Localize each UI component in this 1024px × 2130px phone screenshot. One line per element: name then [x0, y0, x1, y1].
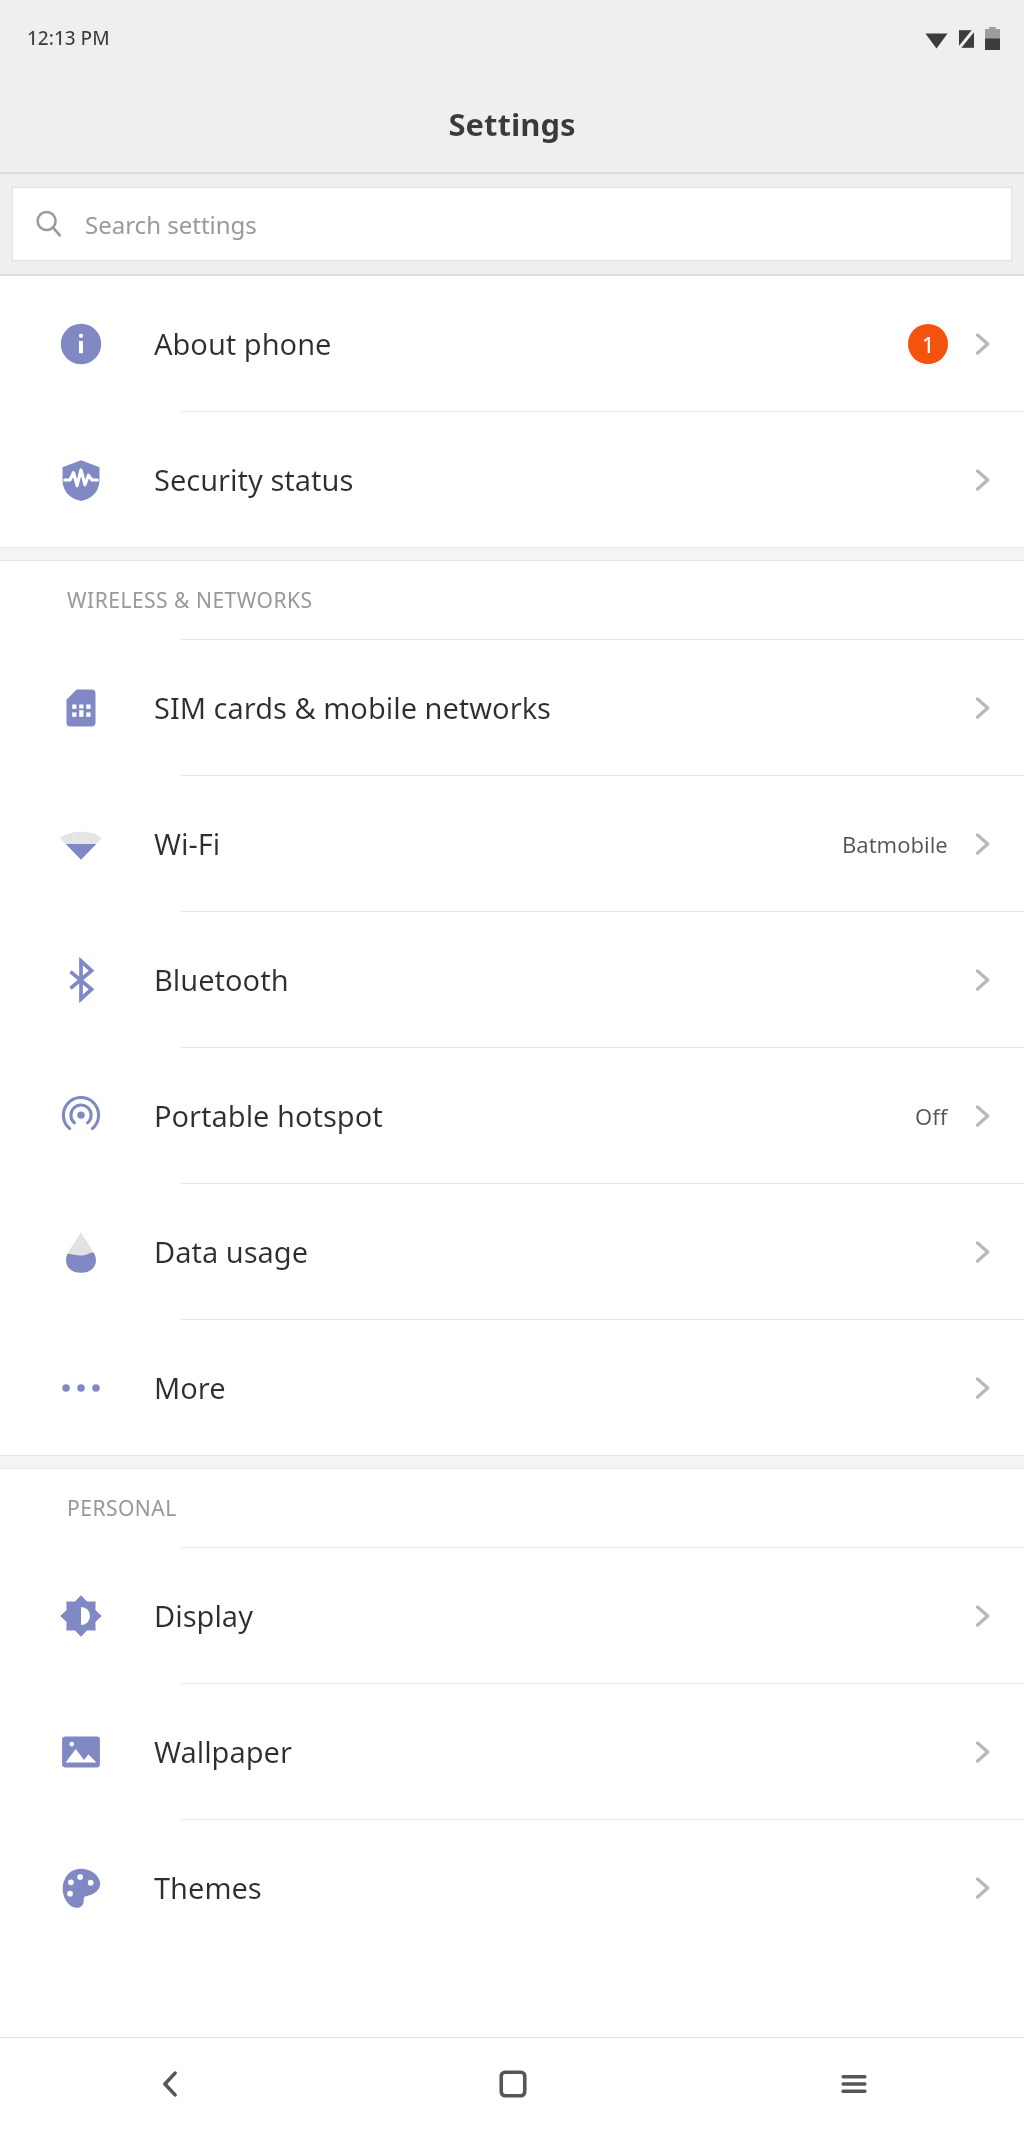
button[interactable]: Search — [12, 187, 1012, 261]
button[interactable]: Security status — [0, 412, 1024, 547]
staticText: 1 — [922, 329, 935, 359]
staticText: Off — [915, 1101, 948, 1131]
button[interactable]: More — [0, 1320, 1024, 1455]
button[interactable]: Portable hotspot — [0, 1048, 1024, 1184]
other: Search — [34, 209, 64, 239]
button[interactable]: Home — [342, 2038, 683, 2130]
staticText: PERSONAL — [67, 1494, 177, 1523]
staticText: Wi-Fi — [154, 824, 842, 863]
staticText: Search settings — [85, 208, 257, 241]
staticText: Batmobile — [842, 829, 948, 859]
staticText: Security status — [154, 460, 966, 499]
button[interactable]: About phone — [0, 276, 1024, 412]
button[interactable]: Recents — [683, 2038, 1024, 2130]
button[interactable]: Bluetooth — [0, 912, 1024, 1048]
button[interactable]: Back — [0, 2038, 342, 2130]
button[interactable]: Wallpaper — [0, 1684, 1024, 1820]
button[interactable]: Wi-Fi — [0, 776, 1024, 912]
staticText: Wallpaper — [154, 1732, 966, 1771]
staticText: More — [154, 1368, 966, 1407]
staticText: Display — [154, 1596, 966, 1635]
staticText: WIRELESS & NETWORKS — [67, 586, 313, 615]
staticText: SIM cards & mobile networks — [154, 688, 966, 727]
button[interactable]: Display — [0, 1548, 1024, 1684]
staticText: About phone — [154, 324, 908, 363]
staticText: Themes — [154, 1868, 966, 1907]
staticText: Settings — [448, 103, 576, 145]
button[interactable]: SIM cards & mobile networks — [0, 640, 1024, 776]
button[interactable]: Themes — [0, 1820, 1024, 1955]
staticText: Bluetooth — [154, 960, 966, 999]
staticText: Data usage — [154, 1232, 966, 1271]
staticText: Portable hotspot — [154, 1096, 915, 1135]
button[interactable]: Data usage — [0, 1184, 1024, 1320]
staticText: 12:13 PM — [27, 25, 110, 51]
